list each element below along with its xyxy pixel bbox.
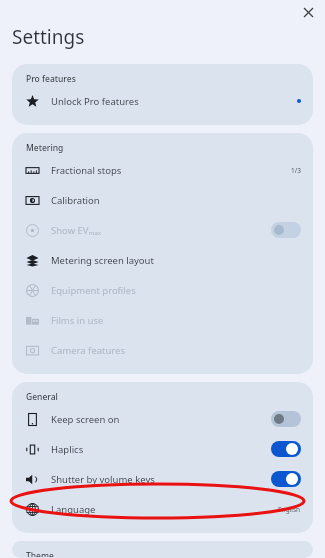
staticText: General bbox=[26, 391, 58, 403]
staticText: 1/3 bbox=[291, 166, 301, 175]
button[interactable]: Keep screen on bbox=[12, 404, 313, 434]
staticText: Unlock Pro features bbox=[51, 95, 139, 108]
button[interactable]: Equipment profiles bbox=[12, 275, 313, 305]
staticText: Language bbox=[51, 503, 96, 516]
staticText: English bbox=[278, 505, 301, 514]
button[interactable]: Toggle bbox=[271, 471, 301, 487]
button[interactable]: Camera features bbox=[12, 335, 313, 365]
button[interactable]: Toggle bbox=[271, 441, 301, 457]
button[interactable]: Shutter by volume keys bbox=[12, 464, 313, 494]
staticText: Settings bbox=[12, 24, 85, 50]
button[interactable]: Toggle bbox=[271, 222, 301, 238]
staticText: Fractional stops bbox=[51, 164, 122, 177]
staticText: Camera features bbox=[51, 344, 126, 357]
button[interactable]: Unlock Pro features bbox=[12, 86, 313, 116]
button[interactable]: Language bbox=[12, 494, 313, 524]
staticText: Haplics bbox=[51, 443, 84, 456]
staticText: Show EVₘₐₓ bbox=[51, 224, 102, 237]
button[interactable]: Toggle bbox=[271, 411, 301, 427]
staticText: Pro features bbox=[26, 73, 76, 85]
staticText: Equipment profiles bbox=[51, 284, 136, 297]
staticText: Metering bbox=[26, 142, 64, 154]
button[interactable]: Films in use bbox=[12, 305, 313, 335]
staticText: Films in use bbox=[51, 314, 104, 327]
staticText: Theme bbox=[26, 550, 54, 557]
button[interactable]: Fractional stops bbox=[12, 155, 313, 185]
button[interactable]: Close bbox=[298, 2, 318, 22]
button[interactable]: Show EVₘₐₓ bbox=[12, 215, 313, 245]
button[interactable]: Metering screen layout bbox=[12, 245, 313, 275]
button[interactable]: Haplics bbox=[12, 434, 313, 464]
staticText: Calibration bbox=[51, 194, 100, 207]
staticText: Keep screen on bbox=[51, 413, 120, 426]
staticText: Metering screen layout bbox=[51, 254, 154, 267]
staticText: Shutter by volume keys bbox=[51, 473, 155, 486]
button[interactable]: Calibration bbox=[12, 185, 313, 215]
